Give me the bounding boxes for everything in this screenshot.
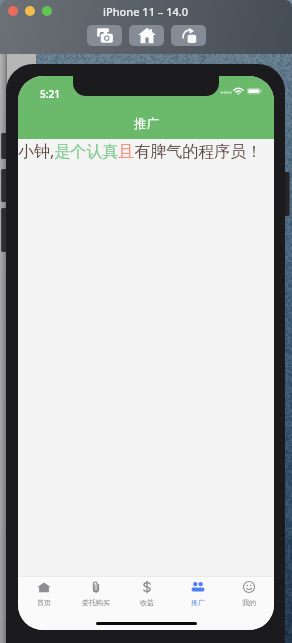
button[interactable]: 委托购买: [70, 577, 121, 611]
button[interactable]: Close: [8, 6, 18, 16]
button[interactable]: Screenshot: [87, 25, 122, 46]
button[interactable]: 我的: [223, 577, 274, 611]
button[interactable]: Zoom: [42, 6, 52, 16]
button[interactable]: 推广: [172, 577, 223, 611]
staticText: 委托购买: [82, 598, 110, 607]
staticText: iPhone 11 – 14.0: [103, 4, 189, 19]
staticText: 收益: [140, 598, 154, 607]
staticText: 推广: [134, 116, 159, 132]
staticText: 小钟,是个认真且有脾气的程序员！: [18, 140, 263, 162]
staticText: 5:21: [40, 87, 60, 101]
button[interactable]: Minimize: [25, 6, 35, 16]
staticText: 推广: [191, 598, 205, 607]
button[interactable]: Home: [129, 25, 164, 46]
button[interactable]: 首页: [18, 577, 70, 611]
staticText: 首页: [37, 598, 51, 607]
staticText: 我的: [242, 598, 256, 607]
button[interactable]: 收益: [121, 577, 172, 611]
button[interactable]: Share: [171, 25, 206, 46]
